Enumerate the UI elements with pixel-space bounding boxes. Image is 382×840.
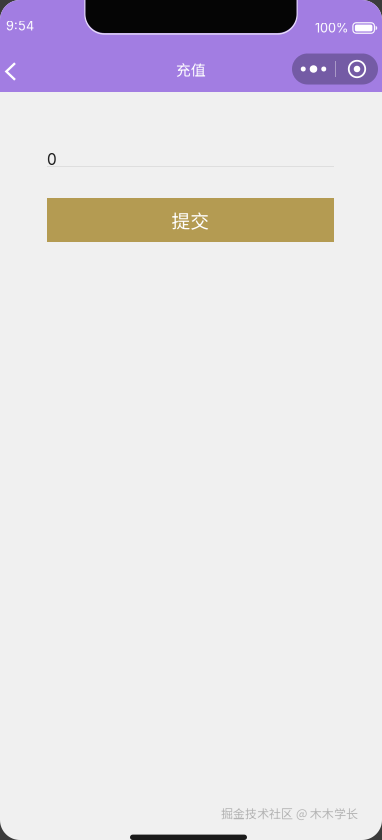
button[interactable]: 更多 (292, 53, 378, 84)
staticText: 提交 (171, 206, 209, 233)
staticText: 充值 (176, 58, 206, 80)
button[interactable]: 返回 (0, 46, 32, 92)
staticText: 100% (315, 20, 348, 36)
staticText: 9:54 (6, 18, 34, 34)
button[interactable]: 提交 (47, 198, 334, 242)
staticText: 掘金技术社区 @ 木木学长 (221, 804, 358, 822)
staticText: 0 (47, 150, 57, 169)
